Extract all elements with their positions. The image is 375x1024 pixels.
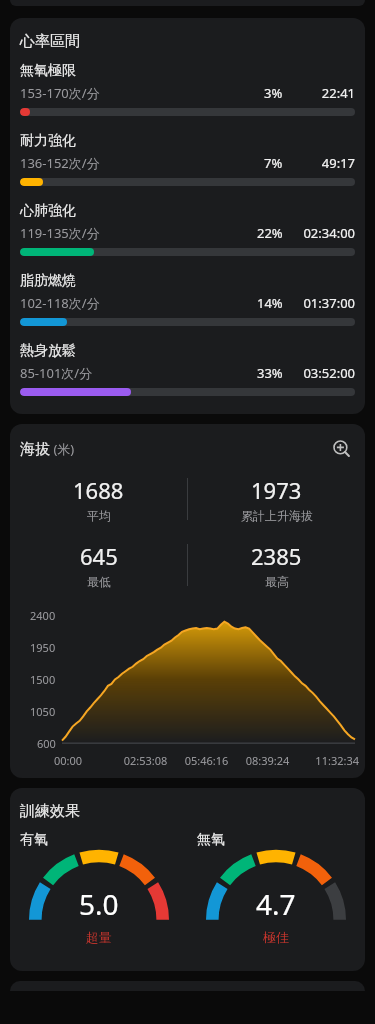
staticText: 脂肪燃燒: [20, 272, 76, 290]
staticText: 1688: [73, 475, 124, 505]
staticText: 熱身放鬆: [20, 342, 76, 360]
button[interactable]: 有氧: [10, 831, 187, 945]
button[interactable]: 無氧: [187, 831, 365, 945]
staticText: (米): [50, 440, 75, 458]
button[interactable]: Zoom in: [329, 436, 355, 462]
staticText: 645: [80, 541, 118, 571]
staticText: 4.7: [256, 885, 296, 923]
staticText: 累計上升海拔: [241, 508, 313, 523]
staticText: 平均: [87, 508, 111, 523]
staticText: 最高: [265, 574, 289, 589]
button[interactable]: 耐力強化: [10, 132, 365, 186]
staticText: 00:00: [54, 753, 115, 768]
staticText: 153-170次/分: [20, 84, 100, 102]
button[interactable]: 熱身放鬆: [10, 342, 365, 396]
staticText: 1950: [30, 640, 56, 655]
staticText: 心率區間: [20, 32, 80, 51]
staticText: 海拔: [20, 440, 50, 459]
staticText: 33%: [257, 364, 283, 382]
staticText: 有氧: [20, 831, 48, 849]
staticText: 11:32:34: [298, 753, 359, 768]
staticText: 無氧: [197, 831, 225, 849]
staticText: 14%: [257, 294, 283, 312]
staticText: 136-152次/分: [20, 154, 100, 172]
staticText: 2385: [251, 541, 302, 571]
staticText: 02:34:00: [293, 224, 355, 242]
staticText: 22%: [257, 224, 283, 242]
staticText: 49:17: [293, 154, 355, 172]
staticText: 1973: [251, 475, 302, 505]
staticText: 600: [37, 736, 56, 751]
staticText: 超量: [10, 929, 187, 945]
staticText: 01:37:00: [293, 294, 355, 312]
staticText: 心肺強化: [20, 202, 76, 220]
staticText: 1050: [30, 704, 56, 719]
staticText: 22:41: [293, 84, 355, 102]
staticText: 102-118次/分: [20, 294, 100, 312]
staticText: 85-101次/分: [20, 364, 93, 382]
staticText: 03:52:00: [293, 364, 355, 382]
staticText: 最低: [87, 574, 111, 589]
staticText: 訓練效果: [20, 802, 80, 821]
staticText: 耐力強化: [20, 132, 76, 150]
button[interactable]: 心肺強化: [10, 202, 365, 256]
staticText: 2400: [30, 608, 56, 623]
button[interactable]: 無氧極限: [10, 62, 365, 116]
staticText: 05:46:16: [176, 753, 237, 768]
staticText: 3%: [264, 84, 283, 102]
staticText: 08:39:24: [237, 753, 298, 768]
staticText: 119-135次/分: [20, 224, 100, 242]
staticText: 7%: [264, 154, 283, 172]
staticText: 5.0: [79, 885, 119, 923]
staticText: 02:53:08: [115, 753, 176, 768]
staticText: 1500: [30, 672, 56, 687]
staticText: 無氧極限: [20, 62, 76, 80]
staticText: 極佳: [187, 929, 365, 945]
button[interactable]: 脂肪燃燒: [10, 272, 365, 326]
